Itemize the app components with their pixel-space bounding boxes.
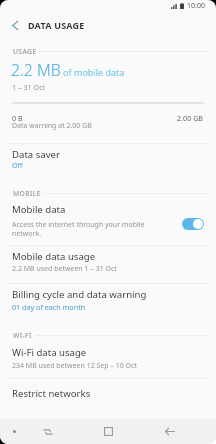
staticText: 2.00 GB	[177, 113, 204, 123]
staticText: Data warning at 2.00 GB	[12, 121, 92, 131]
button[interactable]: Mobile data usage	[0, 250, 216, 282]
staticText: Billing cycle and data warning	[12, 288, 147, 301]
staticText: Mobile data usage	[12, 250, 96, 263]
staticText: Off	[12, 160, 23, 170]
staticText: Wi-Fi data usage	[12, 346, 87, 359]
button[interactable]: Recents	[35, 422, 60, 441]
button[interactable]: Data saver	[0, 148, 216, 176]
staticText: MOBILE	[13, 189, 41, 198]
button[interactable]: Mobile data switch	[182, 218, 204, 230]
staticText: USAGE	[13, 47, 37, 56]
button[interactable]: Mobile data	[0, 203, 216, 245]
button[interactable]: Show buttons	[4, 422, 24, 441]
staticText: 2.2 MB used between 1 – 31 Oct	[12, 264, 117, 274]
button[interactable]: Wi-Fi data usage	[0, 346, 216, 378]
staticText: 2.2 MB of mobile data	[11, 59, 125, 81]
staticText: 1 – 31 Oct	[12, 82, 46, 92]
button[interactable]: Restrict networks	[0, 387, 216, 413]
staticText: Access the internet through your mobile …	[12, 220, 145, 238]
button[interactable]: Back	[157, 422, 182, 441]
button[interactable]: Navigate up	[6, 15, 24, 35]
button[interactable]: Home	[96, 422, 121, 441]
staticText: Data saver	[12, 148, 60, 161]
staticText: Restrict networks	[12, 387, 91, 400]
button[interactable]: Billing cycle and data warning	[0, 288, 216, 320]
staticText: 234 MB used between 12 Sep – 10 Oct	[12, 361, 137, 371]
staticText: Mobile data	[12, 203, 66, 216]
staticText: 0 B	[12, 113, 23, 123]
staticText: WI-FI	[13, 331, 32, 340]
staticText: 01 day of each month	[12, 302, 86, 312]
staticText: DATA USAGE	[28, 19, 85, 31]
staticText: 10:00	[187, 1, 205, 11]
